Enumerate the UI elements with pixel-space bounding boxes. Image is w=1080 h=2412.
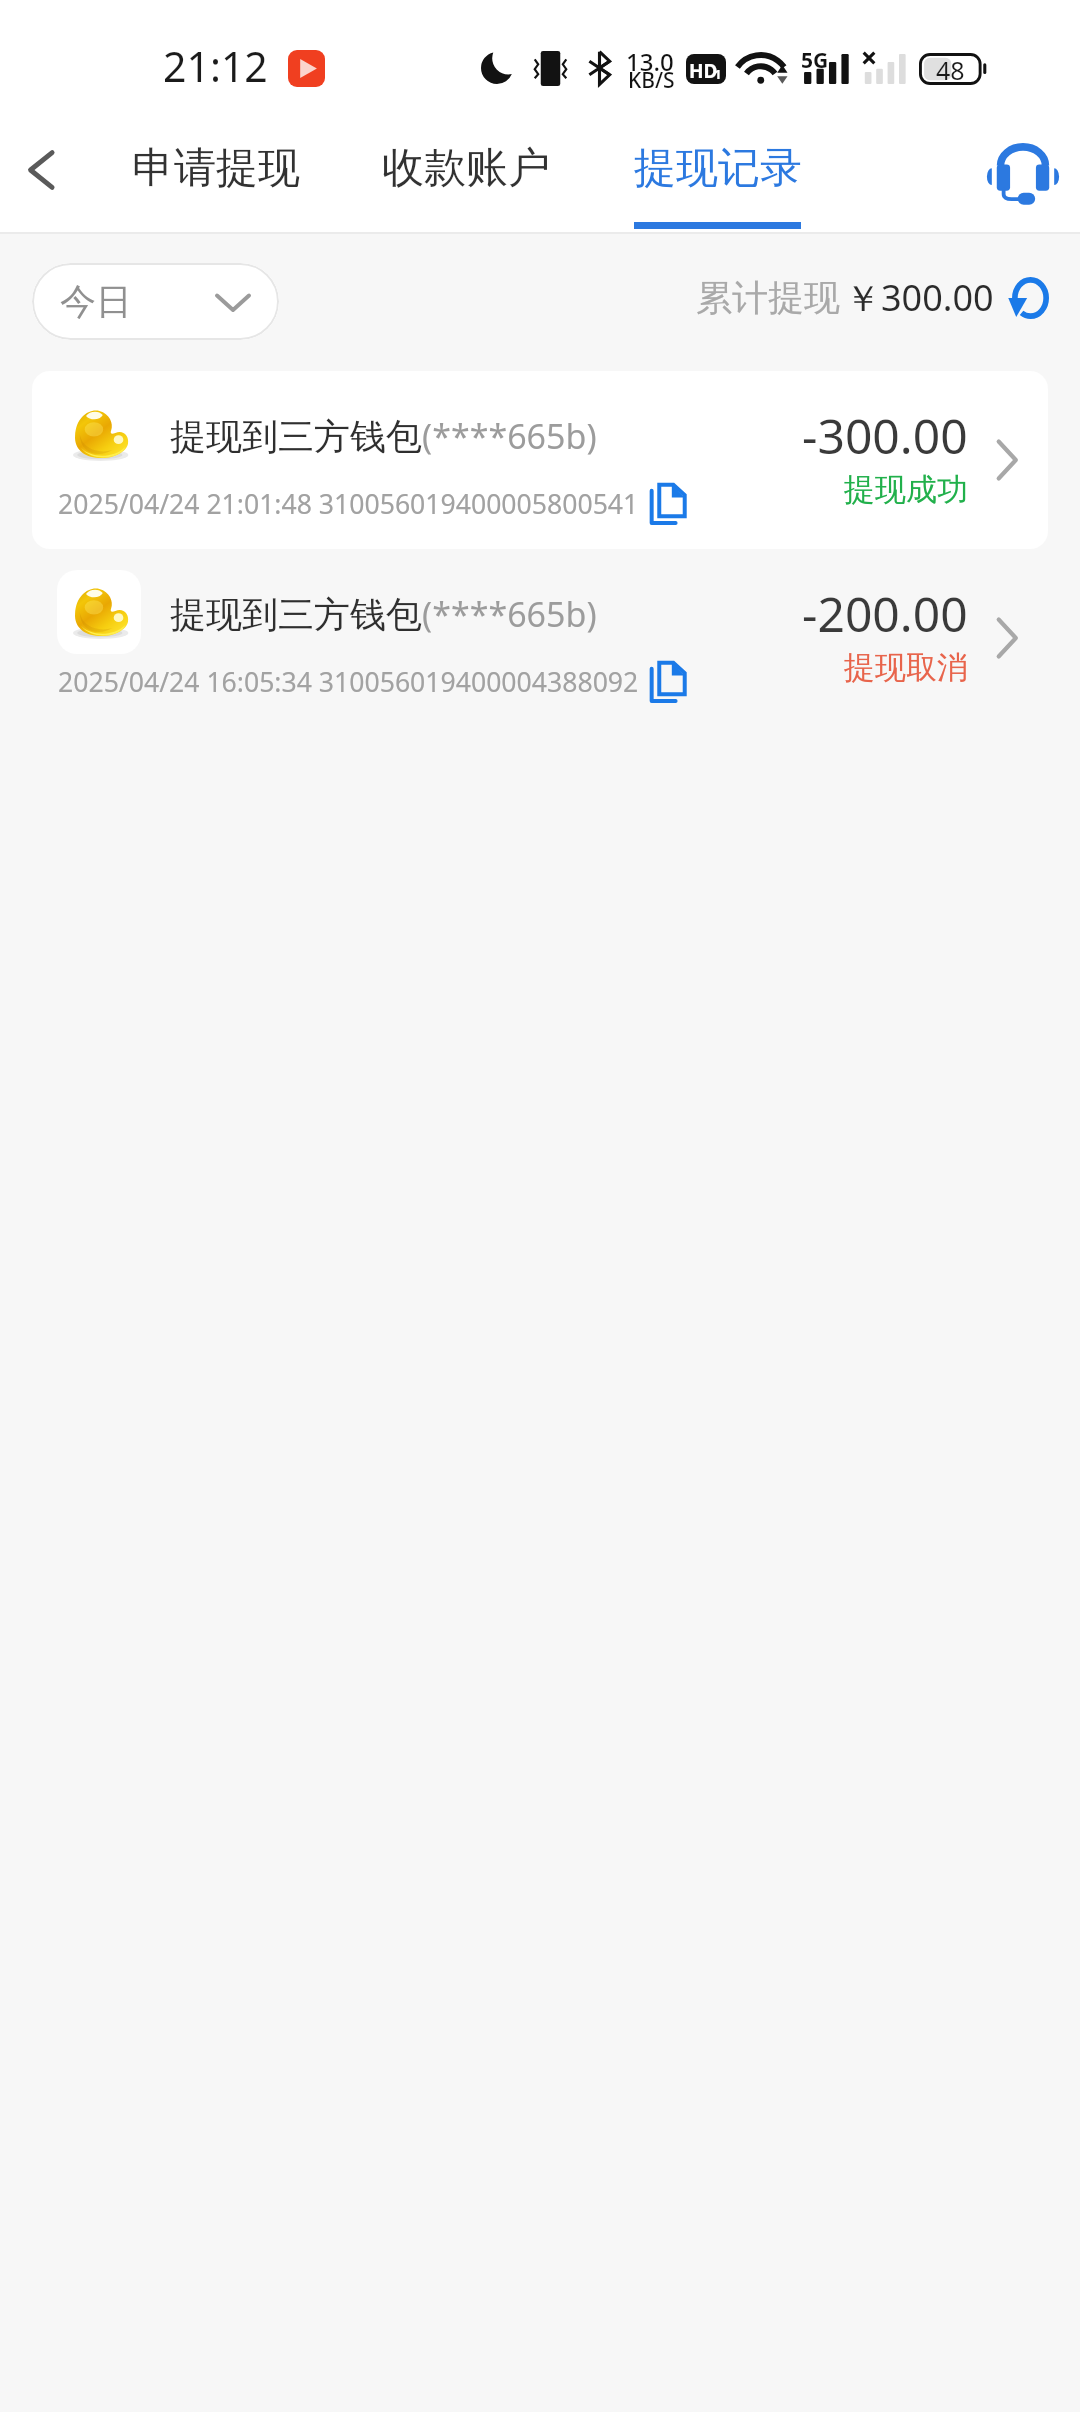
staticText: KB/S: [628, 66, 675, 95]
button[interactable]: 提现到三方钱包: [32, 371, 1048, 549]
staticText: (****665b): [422, 413, 597, 459]
button[interactable]: 提现到三方钱包: [32, 549, 1048, 727]
staticText: 2025/04/24 21:01:48 31005601940000580054…: [58, 486, 639, 522]
button[interactable]: 提现记录: [634, 116, 802, 232]
staticText: 今日: [60, 279, 132, 324]
staticText: 提现取消: [844, 648, 968, 687]
staticText: 申请提现: [132, 142, 300, 195]
staticText: 提现到三方钱包: [170, 414, 422, 459]
staticText: 2025/04/24 16:05:34 31005601940000438809…: [58, 664, 639, 700]
staticText: HD: [689, 58, 718, 84]
staticText: 48: [936, 53, 965, 85]
staticText: (****665b): [422, 591, 597, 637]
staticText: 提现到三方钱包: [170, 592, 422, 637]
staticText: 13.0: [626, 45, 674, 78]
staticText: 收款账户: [382, 142, 550, 195]
button[interactable]: Copy order number: [646, 660, 690, 704]
staticText: -300.00: [802, 403, 968, 468]
button[interactable]: 收款账户: [382, 116, 550, 232]
staticText: 5G: [801, 46, 829, 75]
staticText: 提现成功: [844, 470, 968, 509]
button[interactable]: Back: [0, 132, 84, 216]
staticText: 21:12: [163, 38, 268, 94]
button[interactable]: Customer service: [977, 128, 1069, 220]
button[interactable]: Copy order number: [646, 482, 690, 526]
staticText: -200.00: [802, 581, 968, 646]
staticText: 累计提现: [696, 275, 840, 320]
staticText: ￥300.00: [845, 273, 994, 322]
staticText: 提现记录: [634, 142, 802, 195]
button[interactable]: 今日: [32, 263, 279, 340]
staticText: 1: [714, 65, 722, 83]
button[interactable]: 申请提现: [132, 116, 300, 232]
button[interactable]: Refresh: [1007, 277, 1049, 319]
